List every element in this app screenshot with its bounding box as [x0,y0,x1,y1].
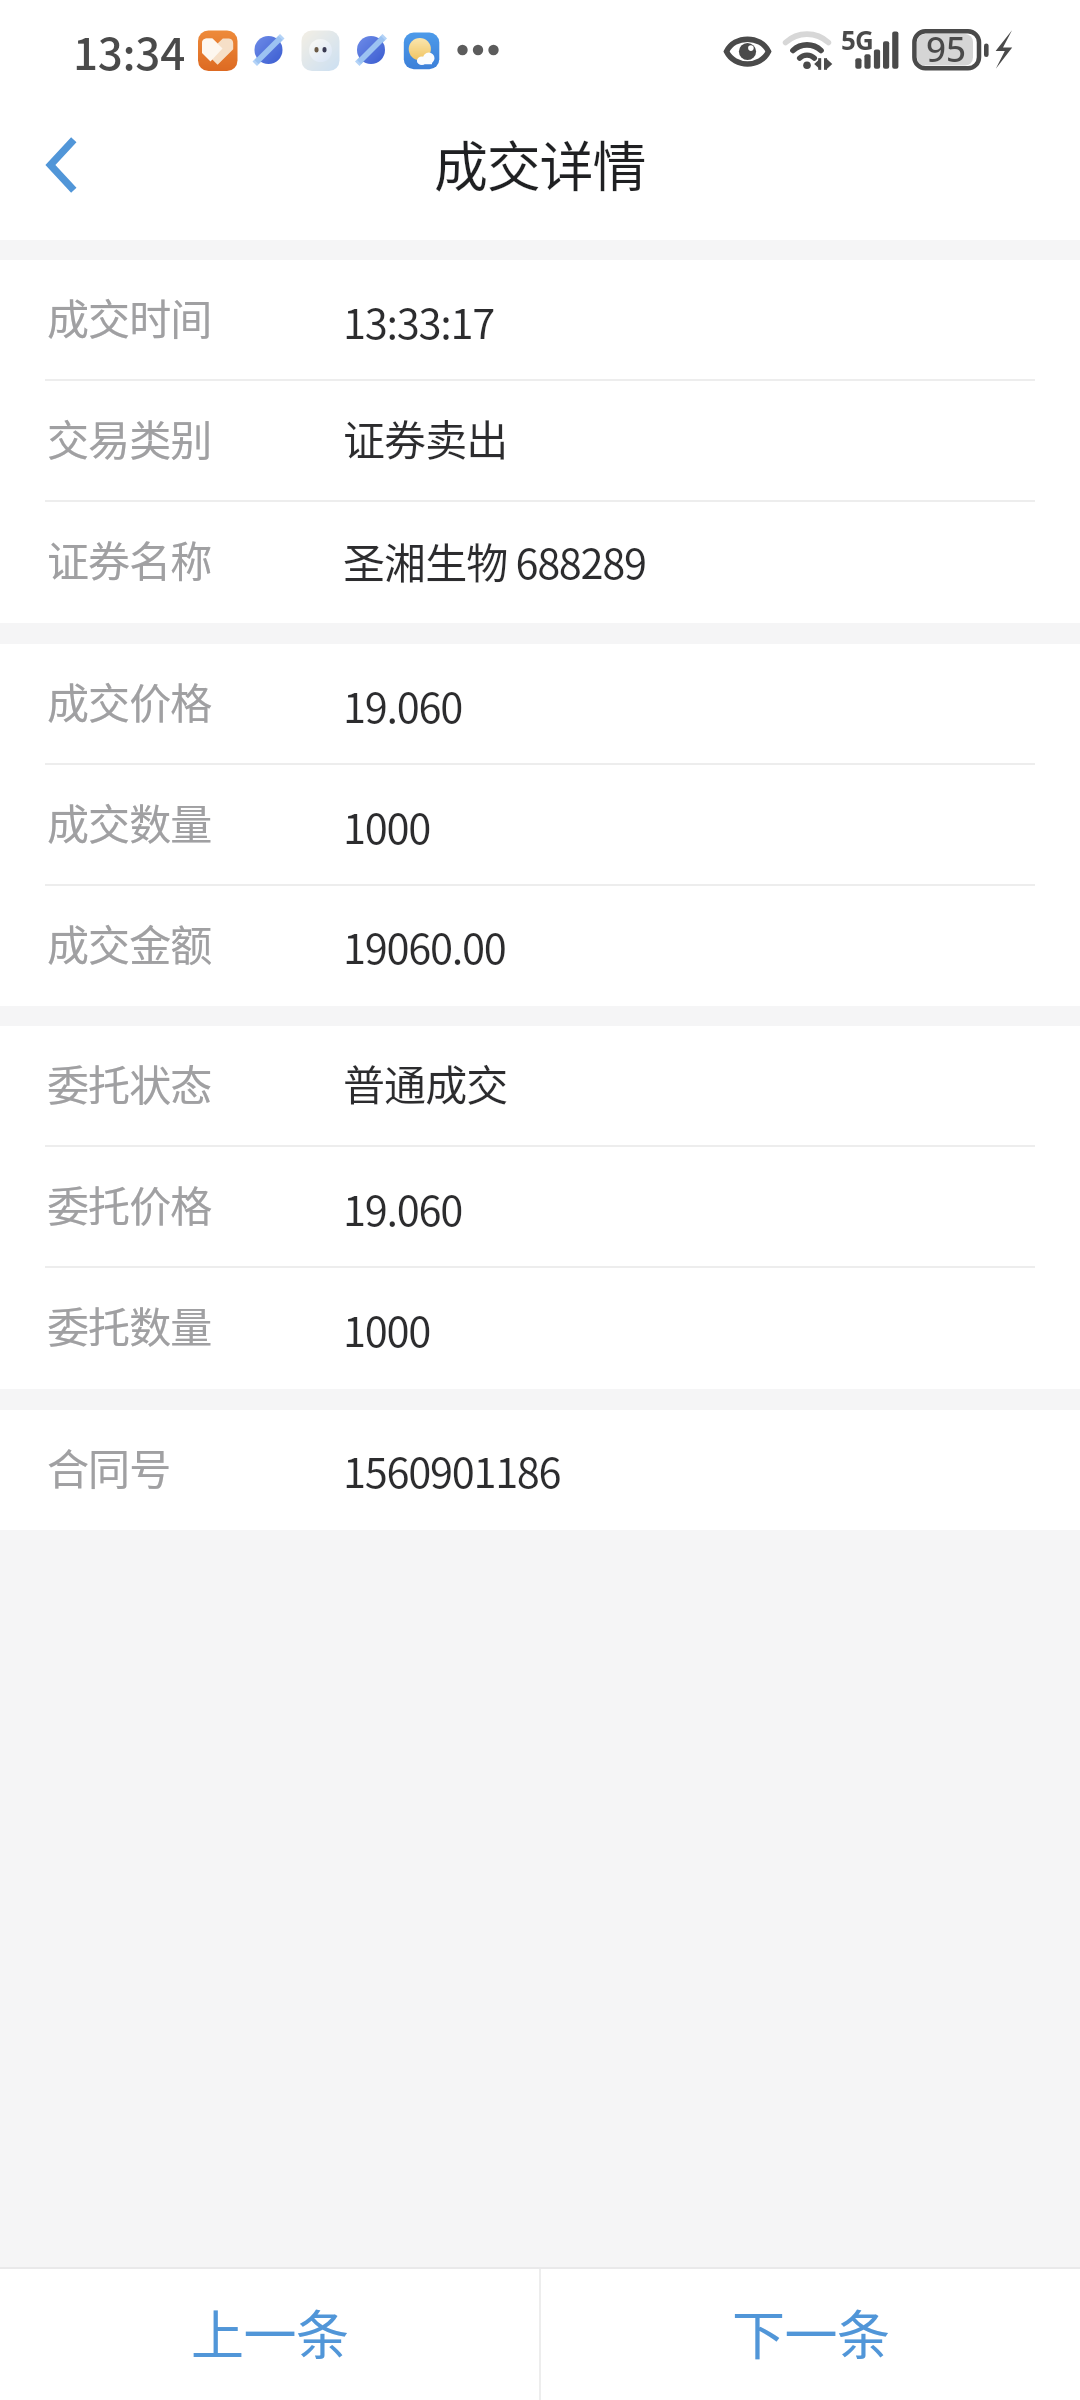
staticText: 成交时间 [47,286,212,347]
staticText: 上一条 [191,2294,349,2371]
staticText: 1000 [343,1299,430,1359]
staticText: 圣湘生物 688289 [343,530,646,591]
button[interactable]: 委托数量 [0,1268,1080,1389]
staticText: 5G [841,22,874,57]
staticText: 13:33:17 [343,291,494,351]
staticText: 1000 [343,796,430,856]
staticText: 13:34 [73,19,185,83]
staticText: 1560901186 [343,1440,561,1500]
button[interactable]: 委托状态 [0,1026,1080,1147]
button[interactable]: 成交金额 [0,886,1080,1006]
button[interactable]: 成交数量 [0,765,1080,886]
button[interactable]: 下一条 [541,2269,1080,2400]
button[interactable]: 证券名称 [0,502,1080,623]
staticText: 下一条 [732,2294,890,2371]
staticText: 成交金额 [47,912,212,973]
button[interactable]: Back [0,90,120,240]
staticText: 19.060 [343,675,462,735]
staticText: 成交详情 [434,124,646,202]
staticText: 证券卖出 [343,407,508,468]
staticText: 19.060 [343,1178,462,1238]
button[interactable]: 上一条 [0,2269,539,2400]
button[interactable]: 成交时间 [0,260,1080,381]
staticText: 委托状态 [47,1052,212,1113]
button[interactable]: 合同号 [0,1410,1080,1530]
staticText: 交易类别 [47,407,212,468]
staticText: 委托数量 [47,1294,212,1355]
button[interactable]: 成交价格 [0,644,1080,765]
staticText: 成交数量 [47,791,212,852]
button[interactable]: 委托价格 [0,1147,1080,1268]
staticText: 成交价格 [47,670,212,731]
staticText: 证券名称 [47,528,212,589]
staticText: 95 [926,25,967,73]
staticText: 普通成交 [343,1052,508,1113]
staticText: 19060.00 [343,916,506,976]
staticText: 委托价格 [47,1173,212,1234]
button[interactable]: 交易类别 [0,381,1080,502]
staticText: 合同号 [47,1436,171,1497]
